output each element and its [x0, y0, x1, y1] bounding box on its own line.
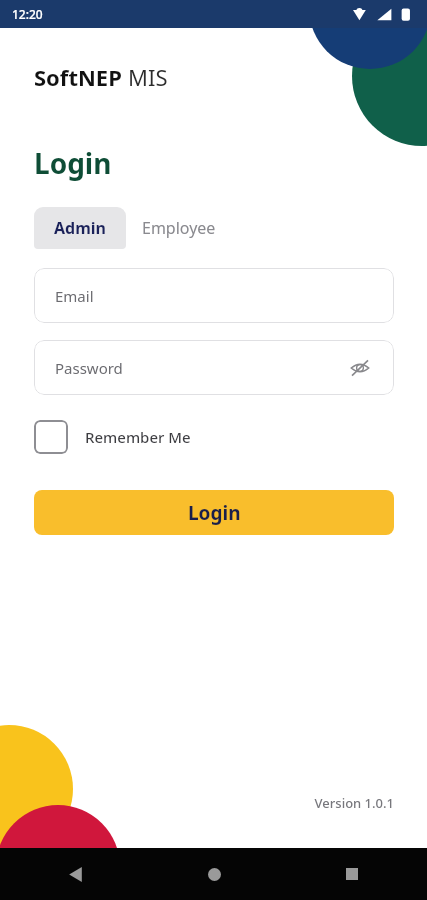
- button[interactable]: Employee: [126, 207, 232, 249]
- button[interactable]: Remember Me: [34, 420, 191, 454]
- staticText: Login: [34, 144, 112, 182]
- button[interactable]: Login: [34, 490, 394, 535]
- staticText: Email: [55, 286, 94, 306]
- staticText: Version 1.0.1: [34, 794, 394, 812]
- button[interactable]: Password: [34, 340, 394, 395]
- staticText: Login: [188, 500, 241, 526]
- button[interactable]: Email: [34, 268, 394, 323]
- button[interactable]: Recent apps: [335, 857, 369, 891]
- staticText: MIS: [128, 62, 168, 92]
- button[interactable]: Admin: [34, 207, 126, 249]
- staticText: Password: [55, 358, 123, 378]
- button[interactable]: Back: [58, 857, 92, 891]
- staticText: Admin: [54, 217, 106, 239]
- staticText: 12:20: [12, 6, 43, 22]
- button[interactable]: Show password: [347, 355, 373, 381]
- staticText: Employee: [142, 217, 216, 239]
- staticText: SoftNEP: [34, 62, 122, 92]
- staticText: Remember Me: [85, 427, 191, 447]
- button[interactable]: Home: [197, 857, 231, 891]
